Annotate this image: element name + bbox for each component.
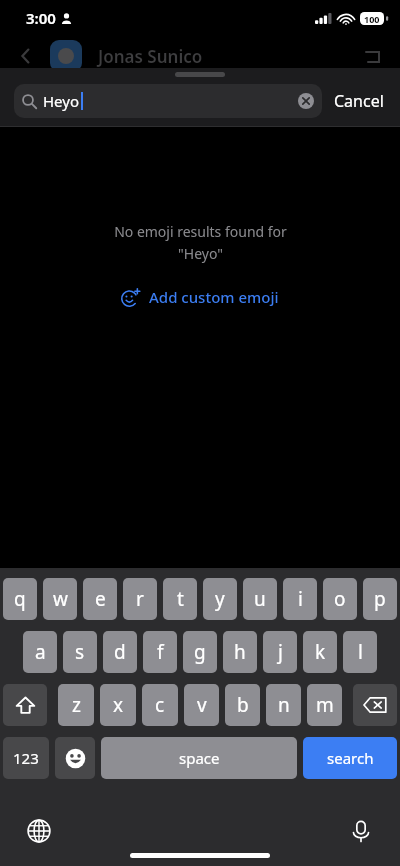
button[interactable]: g: [183, 631, 217, 673]
staticText: search: [327, 748, 374, 768]
button[interactable]: q: [3, 578, 37, 620]
button[interactable]: r: [123, 578, 157, 620]
button[interactable]: space: [101, 737, 297, 779]
staticText: d: [114, 639, 126, 665]
staticText: t: [177, 586, 184, 612]
other: Back: [16, 46, 36, 66]
button[interactable]: h: [223, 631, 257, 673]
staticText: v: [197, 692, 207, 718]
staticText: g: [194, 639, 206, 665]
staticText: n: [278, 692, 290, 718]
staticText: f: [157, 639, 164, 665]
button[interactable]: Backspace: [353, 684, 397, 726]
staticText: u: [254, 586, 266, 612]
staticText: Heyo: [43, 91, 80, 111]
button[interactable]: v: [184, 684, 219, 726]
staticText: 100: [364, 13, 380, 25]
button[interactable]: s: [63, 631, 97, 673]
staticText: o: [334, 586, 346, 612]
button[interactable]: k: [303, 631, 337, 673]
staticText: z: [72, 692, 81, 718]
button[interactable]: x: [100, 684, 136, 726]
button[interactable]: i: [283, 578, 317, 620]
staticText: m: [316, 692, 334, 718]
staticText: w: [53, 586, 68, 612]
button[interactable]: b: [225, 684, 260, 726]
button[interactable]: c: [142, 684, 178, 726]
button[interactable]: w: [43, 578, 77, 620]
button[interactable]: j: [263, 631, 297, 673]
button[interactable]: e: [83, 578, 117, 620]
staticText: r: [136, 586, 144, 612]
button[interactable]: l: [343, 631, 377, 673]
button[interactable]: f: [143, 631, 177, 673]
button[interactable]: Dictation: [348, 818, 374, 844]
staticText: Jonas Sunico: [98, 45, 203, 68]
button[interactable]: search: [303, 737, 397, 779]
staticText: "Heyo": [178, 244, 223, 263]
button[interactable]: u: [243, 578, 277, 620]
button[interactable]: t: [163, 578, 197, 620]
button[interactable]: Add custom emoji: [113, 283, 287, 311]
button[interactable]: z: [58, 684, 94, 726]
staticText: 123: [13, 748, 39, 768]
staticText: No emoji results found for: [114, 222, 287, 241]
staticText: k: [315, 639, 326, 665]
button[interactable]: d: [103, 631, 137, 673]
other: Reply: [364, 46, 384, 66]
staticText: Cancel: [334, 90, 384, 112]
staticText: s: [75, 639, 85, 665]
staticText: p: [374, 586, 386, 612]
staticText: b: [237, 692, 249, 718]
staticText: 3:00: [26, 8, 56, 28]
button[interactable]: n: [266, 684, 301, 726]
staticText: x: [113, 692, 124, 718]
button[interactable]: m: [307, 684, 342, 726]
button[interactable]: 123: [3, 737, 49, 779]
button[interactable]: Cancel: [322, 90, 386, 112]
button[interactable]: Heyo: [14, 84, 322, 118]
button[interactable]: Clear text: [298, 93, 314, 109]
button[interactable]: y: [203, 578, 237, 620]
button[interactable]: Shift: [3, 684, 47, 726]
staticText: c: [155, 692, 165, 718]
staticText: a: [35, 639, 46, 665]
staticText: l: [358, 639, 363, 665]
staticText: e: [95, 586, 106, 612]
staticText: q: [14, 586, 26, 612]
button[interactable]: Emoji: [55, 737, 95, 779]
staticText: space: [179, 748, 220, 768]
button[interactable]: p: [363, 578, 397, 620]
staticText: j: [278, 639, 283, 665]
staticText: h: [234, 639, 246, 665]
button[interactable]: o: [323, 578, 357, 620]
button[interactable]: Change keyboard language: [26, 818, 52, 844]
staticText: y: [215, 586, 225, 612]
staticText: i: [298, 586, 303, 612]
button[interactable]: a: [23, 631, 57, 673]
staticText: Add custom emoji: [149, 287, 279, 307]
